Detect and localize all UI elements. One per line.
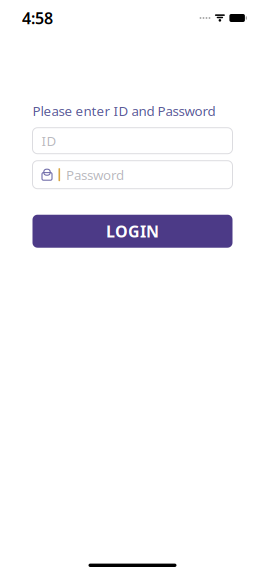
button[interactable]: LOGIN xyxy=(32,215,232,248)
staticText: 4:58 xyxy=(22,7,53,29)
staticText: Please enter ID and Password xyxy=(32,102,215,120)
button[interactable]: ID xyxy=(32,128,232,154)
staticText: LOGIN xyxy=(106,221,159,242)
staticText: ID xyxy=(41,132,56,150)
button[interactable]: Password xyxy=(32,161,232,189)
staticText: Password xyxy=(66,166,124,184)
